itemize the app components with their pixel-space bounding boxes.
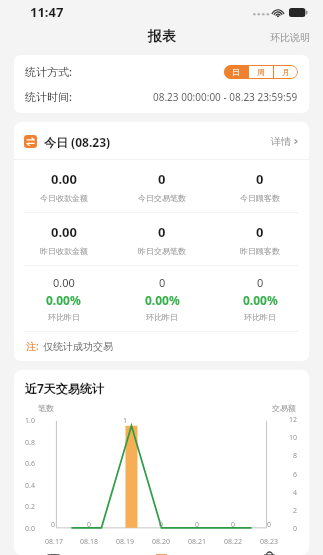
staticText: 0 <box>256 170 264 188</box>
staticText: 报表 <box>148 28 176 46</box>
button[interactable]: 日 <box>224 65 248 79</box>
staticText: 12 <box>289 415 298 425</box>
staticText: 今日顾客数 <box>240 193 280 203</box>
staticText: 0.00% <box>145 292 180 308</box>
staticText: 0 <box>159 520 164 530</box>
staticText: 统计时间: <box>25 89 72 104</box>
staticText: 08.20 <box>152 537 170 547</box>
staticText: 0.4 <box>25 481 35 491</box>
staticText: 0.0 <box>25 524 35 534</box>
staticText: 10 <box>289 433 298 443</box>
staticText: 0 <box>231 520 236 530</box>
staticText: 08.21 <box>188 537 206 547</box>
button[interactable]: 周 <box>249 65 273 79</box>
staticText: 昨日收款金额 <box>40 246 88 256</box>
staticText: 周 <box>257 67 265 77</box>
staticText: 08.23 <box>260 537 278 547</box>
staticText: 08.22 <box>224 537 242 547</box>
button[interactable]: 详情 <box>260 130 309 153</box>
staticText: 0 <box>158 223 166 241</box>
staticText: 仅统计成功交易 <box>43 340 113 353</box>
staticText: 1 <box>123 416 128 426</box>
staticText: 0.00 <box>53 275 75 290</box>
staticText: 详情 <box>271 135 291 148</box>
staticText: 08.23 00:00:00 - 08.23 23:59:59 <box>153 90 298 104</box>
staticText: 昨日顾客数 <box>240 246 280 256</box>
staticText: 交易额 <box>272 403 296 413</box>
staticText: 2 <box>293 506 298 516</box>
staticText: 0 <box>87 520 92 530</box>
staticText: 08.18 <box>80 537 98 547</box>
staticText: 0 <box>267 520 272 530</box>
staticText: 0 <box>257 275 264 290</box>
staticText: 8 <box>293 451 298 461</box>
staticText: 0 <box>159 275 166 290</box>
staticText: 4 <box>293 488 298 498</box>
staticText: 0.8 <box>25 438 35 448</box>
staticText: 6 <box>293 470 298 480</box>
button[interactable]: 月 <box>274 65 298 79</box>
staticText: 昨日交易笔数 <box>138 246 186 256</box>
staticText: 环比昨日 <box>244 312 276 322</box>
staticText: 11:47 <box>30 3 64 21</box>
staticText: 统计方式: <box>25 64 72 79</box>
staticText: 月 <box>282 67 290 77</box>
staticText: 0 <box>256 223 264 241</box>
button[interactable]: 环比说明 <box>257 26 323 49</box>
staticText: 0 <box>293 524 298 534</box>
staticText: 今日收款金额 <box>40 193 88 203</box>
staticText: 0.00% <box>243 292 278 308</box>
staticText: 0.00% <box>46 292 81 308</box>
staticText: 0.00 <box>51 223 77 241</box>
staticText: 0 <box>195 520 200 530</box>
staticText: 近7天交易统计 <box>25 380 104 396</box>
staticText: 今日交易笔数 <box>138 193 186 203</box>
staticText: 环比昨日 <box>146 312 178 322</box>
staticText: 08.17 <box>45 537 63 547</box>
staticText: 环比昨日 <box>48 312 80 322</box>
staticText: 0 <box>158 170 166 188</box>
staticText: 今日 (08.23) <box>44 134 111 150</box>
staticText: 1.0 <box>25 416 35 426</box>
staticText: 0.6 <box>25 459 35 469</box>
staticText: 0.2 <box>25 502 35 512</box>
staticText: 环比说明 <box>270 31 310 44</box>
staticText: 0 <box>51 520 56 530</box>
staticText: 笔数 <box>38 403 54 413</box>
staticText: 08.19 <box>116 537 134 547</box>
staticText: 0.00 <box>51 170 77 188</box>
staticText: 日 <box>232 67 240 77</box>
staticText: 注: <box>26 339 39 353</box>
